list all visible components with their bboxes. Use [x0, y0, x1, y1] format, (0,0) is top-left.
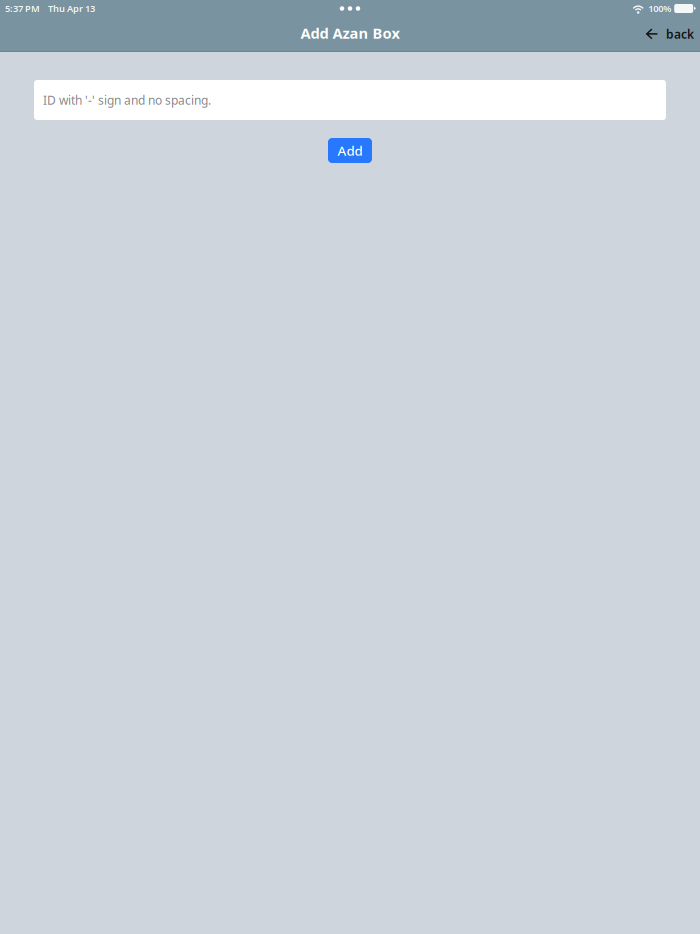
button[interactable]: ID with '-' sign and no spacing. — [34, 80, 666, 120]
staticText: Add Azan Box — [300, 23, 399, 43]
staticText: 5:37 PM — [5, 2, 40, 15]
button[interactable]: Add — [328, 138, 372, 163]
staticText: 100% — [648, 2, 671, 15]
staticText: ID with '-' sign and no spacing. — [43, 92, 211, 108]
button[interactable]: back — [641, 21, 699, 47]
staticText: back — [666, 26, 694, 42]
staticText: Add — [337, 142, 362, 159]
staticText: Thu Apr 13 — [48, 2, 95, 15]
